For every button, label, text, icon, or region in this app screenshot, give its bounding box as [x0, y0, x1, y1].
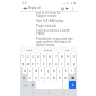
button[interactable]: 2 — [26, 53, 30, 60]
button[interactable]: j — [57, 67, 62, 74]
staticText: m — [64, 76, 67, 80]
button[interactable]: k — [63, 67, 68, 74]
staticText: e — [32, 62, 34, 66]
button[interactable]: Home — [47, 91, 51, 95]
button[interactable]: v — [45, 74, 50, 81]
staticText: s — [29, 69, 31, 73]
button[interactable]: 4 — [36, 53, 40, 60]
button[interactable]: Recents — [62, 91, 66, 95]
button[interactable]: 0 — [71, 53, 76, 60]
button[interactable]: z — [28, 74, 32, 81]
staticText: sent to the team list — [36, 11, 61, 15]
staticText: Project details — [36, 24, 56, 28]
button[interactable]: m — [63, 74, 68, 81]
button[interactable]: 8 — [59, 53, 64, 60]
button[interactable]: Period — [63, 81, 68, 89]
button[interactable]: u — [53, 60, 58, 67]
staticText: CHECK SCHEDULE NOTE — [36, 29, 71, 33]
staticText: 8 — [61, 55, 63, 59]
staticText: c — [41, 76, 43, 80]
button[interactable]: n — [57, 74, 62, 81]
staticText: Subject matter — [36, 14, 57, 18]
button[interactable]: b — [51, 74, 56, 81]
staticText: TIMES — [36, 32, 45, 36]
staticText: w — [27, 62, 30, 66]
staticText: . — [65, 83, 66, 87]
button[interactable]: a — [23, 67, 27, 74]
button[interactable]: Back — [22, 5, 28, 11]
button[interactable]: c — [39, 74, 44, 81]
staticText: 6 — [49, 55, 51, 59]
staticText: 2 — [27, 55, 29, 59]
staticText: ?123 — [23, 84, 28, 87]
staticText: 3 — [32, 55, 34, 59]
staticText: x — [35, 76, 37, 80]
staticText: a — [24, 69, 26, 73]
button[interactable]: w — [26, 60, 30, 67]
button[interactable]: g — [45, 67, 50, 74]
staticText: Provide the requested det — [36, 37, 73, 41]
staticText: Good — [26, 48, 33, 51]
button[interactable]: p — [71, 60, 76, 67]
button[interactable]: d — [33, 67, 38, 74]
button[interactable]: Back — [31, 91, 35, 95]
staticText: g — [47, 69, 49, 73]
button[interactable]: Thanks — [39, 46, 58, 53]
button[interactable]: y — [47, 60, 52, 67]
staticText: v — [47, 76, 49, 80]
button[interactable]: o — [65, 60, 70, 67]
button[interactable]: e — [31, 60, 35, 67]
staticText: o — [67, 62, 69, 66]
button[interactable]: q — [21, 60, 25, 67]
button[interactable]: 9 — [65, 53, 70, 60]
staticText: i — [61, 62, 62, 66]
staticText: 0 — [73, 55, 75, 59]
button[interactable]: The — [58, 46, 77, 53]
button[interactable]: Attach file — [60, 6, 65, 11]
button[interactable]: Backspace — [69, 74, 76, 81]
button[interactable]: 7 — [53, 53, 58, 60]
staticText: The — [65, 48, 70, 51]
button[interactable]: Send — [65, 6, 70, 11]
staticText: n — [59, 76, 61, 80]
button[interactable]: 6 — [47, 53, 52, 60]
button[interactable]: x — [33, 74, 38, 81]
button[interactable]: l — [69, 67, 74, 74]
staticText: l — [71, 69, 72, 73]
button[interactable]: Enter — [69, 81, 76, 89]
staticText: y — [49, 62, 51, 66]
staticText: 4 — [37, 55, 39, 59]
button[interactable]: Symbols — [21, 81, 29, 89]
button[interactable]: i — [59, 60, 64, 67]
button[interactable]: Good — [20, 46, 39, 53]
staticText: 7 — [55, 55, 57, 59]
button[interactable]: s — [28, 67, 32, 74]
staticText: 5 — [43, 55, 45, 59]
staticText: r — [37, 62, 39, 66]
staticText: 1 — [22, 55, 24, 59]
staticText: q — [22, 62, 24, 66]
button[interactable]: 1 — [21, 53, 25, 60]
staticText: k — [65, 69, 67, 73]
staticText: and confirm the latest dr — [36, 40, 71, 44]
staticText: Sent 9:41 AM today — [36, 19, 64, 23]
staticText: j — [59, 69, 60, 73]
staticText: d — [35, 69, 37, 73]
staticText: f — [41, 69, 43, 73]
staticText: t — [43, 62, 45, 66]
button[interactable]: Shift — [21, 74, 27, 81]
staticText: Thanks — [44, 48, 53, 51]
button[interactable]: h — [51, 67, 56, 74]
button[interactable]: Emoji — [30, 81, 35, 89]
button[interactable]: 5 — [41, 53, 46, 60]
button[interactable]: t — [41, 60, 46, 67]
button[interactable]: More options — [70, 6, 75, 11]
button[interactable]: r — [36, 60, 40, 67]
staticText: u — [55, 62, 57, 66]
button[interactable]: 3 — [31, 53, 35, 60]
staticText: b — [53, 76, 55, 80]
staticText: 9:41 — [22, 1, 28, 5]
staticText: 9 — [67, 55, 69, 59]
button[interactable]: f — [39, 67, 44, 74]
